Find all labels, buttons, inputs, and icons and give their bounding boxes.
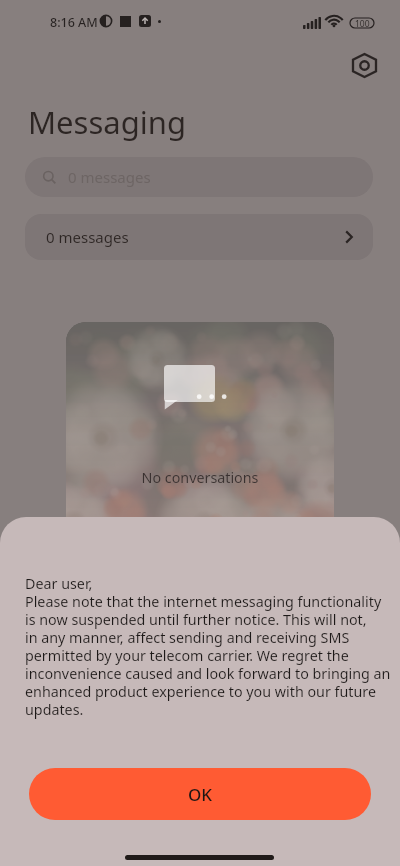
staticText: 0 messages (46, 227, 129, 247)
staticText: Messaging (28, 101, 186, 143)
staticText: 0 messages (68, 167, 151, 187)
staticText: 8:16 AM (50, 14, 98, 31)
staticText: Dear user, Please note that the internet… (25, 574, 391, 719)
button[interactable]: 0 messages (25, 214, 373, 260)
button[interactable]: Settings (347, 48, 381, 82)
staticText: 100 (355, 18, 370, 28)
staticText: OK (188, 783, 213, 806)
staticText: No conversations (66, 468, 334, 487)
button[interactable]: OK (29, 768, 371, 820)
